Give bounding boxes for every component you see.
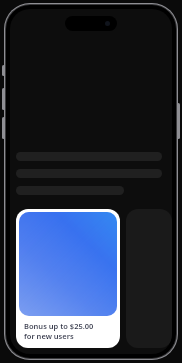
other: Side button — [177, 103, 180, 139]
staticText: Bonus up to $25.00 for new users — [24, 321, 94, 341]
other: Mute switch — [2, 65, 5, 76]
other: Volume up — [2, 88, 5, 110]
button[interactable]: Bonus up to $25.00 for new users — [16, 209, 120, 348]
other: Volume down — [2, 117, 5, 139]
